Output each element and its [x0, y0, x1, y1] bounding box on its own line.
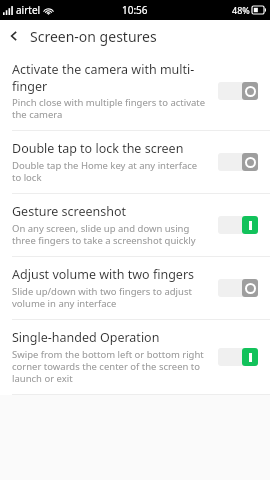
button[interactable]: On: [218, 347, 258, 367]
button[interactable]: Single-handed Operation: [0, 320, 270, 394]
staticText: Adjust volume with two fingers: [12, 266, 195, 283]
button[interactable]: Off: [218, 278, 258, 298]
staticText: Pinch close with multiple fingers to act…: [12, 96, 208, 121]
staticText: Screen-on gestures: [30, 27, 157, 46]
button[interactable]: Gesture screenshot: [0, 194, 270, 256]
staticText: Double tap the Home key at any interface…: [12, 159, 208, 184]
staticText: On any screen, slide up and down using t…: [12, 222, 208, 247]
button[interactable]: Off: [218, 81, 258, 101]
button[interactable]: Double tap to lock the screen: [0, 131, 270, 193]
staticText: Single-handed Operation: [12, 329, 160, 346]
staticText: Swipe from the bottom left or bottom rig…: [12, 348, 208, 385]
staticText: 48%: [232, 4, 250, 16]
staticText: Slide up/down with two fingers to adjust…: [12, 285, 208, 310]
button[interactable]: Activate the camera with multi-finger: [0, 52, 270, 130]
staticText: Double tap to lock the screen: [12, 140, 184, 157]
button[interactable]: Back: [0, 22, 28, 50]
staticText: 10:56: [122, 3, 148, 17]
staticText: Gesture screenshot: [12, 203, 127, 220]
staticText: Activate the camera with multi-finger: [12, 61, 208, 94]
staticText: airtel: [16, 3, 41, 17]
button[interactable]: On: [218, 215, 258, 235]
button[interactable]: Adjust volume with two fingers: [0, 257, 270, 319]
button[interactable]: Off: [218, 152, 258, 172]
